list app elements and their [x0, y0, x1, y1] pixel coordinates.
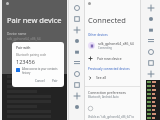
- staticText: See all: [96, 75, 107, 80]
- staticText: sdk_gphone64_x86_64: [98, 41, 134, 46]
- staticText: Other devices: [88, 33, 108, 37]
- button[interactable]: Emulator control 9: [71, 101, 82, 112]
- staticText: history: [22, 71, 31, 75]
- button[interactable]: Emulator control 7: [71, 79, 82, 90]
- button[interactable]: Emulator control 3: [71, 35, 82, 46]
- button[interactable]: Emulator control 9: [145, 79, 156, 90]
- button[interactable]: Emulator control 8: [71, 90, 82, 101]
- staticText: Allow access to your contacts and call: [22, 67, 60, 71]
- button[interactable]: Emulator control 4: [71, 46, 82, 57]
- button[interactable]: Emulator control 8: [145, 68, 156, 79]
- button[interactable]: Emulator control 6: [145, 46, 156, 57]
- staticText: Bluetooth, Android Auto: [88, 95, 119, 99]
- button[interactable]: Emulator control 2: [145, 2, 156, 13]
- button[interactable]: Emulator control 2: [71, 24, 82, 35]
- button[interactable]: Emulator control 5: [145, 35, 156, 46]
- button[interactable]: Info: [88, 106, 93, 111]
- button[interactable]: Emulator control 3: [145, 13, 156, 24]
- button[interactable]: Emulator control 5: [71, 57, 82, 68]
- staticText: Pair: [52, 79, 58, 83]
- staticText: Device name: [7, 32, 27, 36]
- button[interactable]: Emulator control 1: [71, 13, 82, 24]
- button[interactable]: Emulator control 11: [145, 101, 156, 112]
- button[interactable]: Cancel: [33, 78, 47, 84]
- staticText: Pair new device: [97, 56, 122, 61]
- staticText: sdk_gphone64_x86_64: [7, 37, 41, 41]
- button[interactable]: Pair: [50, 78, 60, 84]
- staticText: Pair with sdk_gphone64_x86_64?: [16, 45, 60, 50]
- button[interactable]: Emulator control 4: [145, 24, 156, 35]
- button[interactable]: Emulator control 6: [71, 68, 82, 79]
- staticText: Connecting: [98, 46, 112, 50]
- button[interactable]: See all: [84, 74, 140, 81]
- button[interactable]: Pair new device: [84, 55, 140, 62]
- staticText: Pair new device: [7, 15, 62, 25]
- button[interactable]: sdk_gphone64_x86_64: [84, 40, 140, 51]
- staticText: Previously connected devices: [88, 67, 130, 71]
- button[interactable]: Emulator control 10: [145, 90, 156, 101]
- staticText: Bluetooth pairing code: [16, 53, 47, 57]
- staticText: Visible as "sdk_gphone64_x86_64" to othe…: [88, 115, 140, 119]
- staticText: Connected devices: [88, 15, 140, 25]
- staticText: Connection preferences: [88, 90, 126, 95]
- staticText: Cancel: [35, 79, 45, 83]
- staticText: 123456: [16, 58, 35, 65]
- button[interactable]: Emulator control 7: [145, 57, 156, 68]
- button[interactable]: Emulator control 0: [71, 2, 82, 13]
